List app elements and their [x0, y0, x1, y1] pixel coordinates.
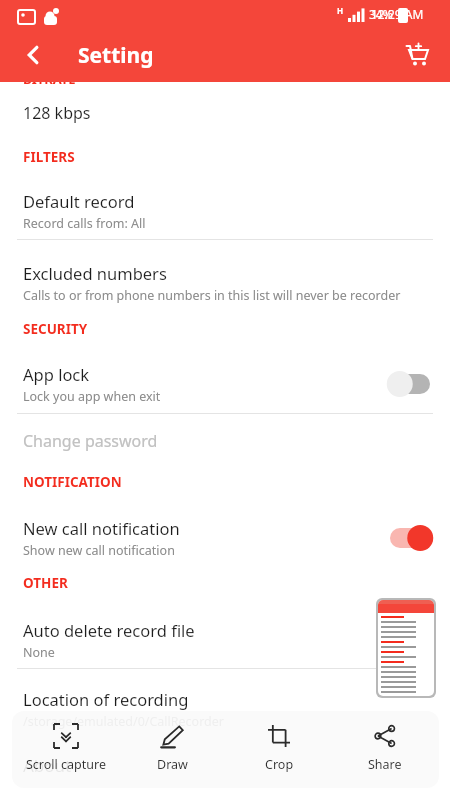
button[interactable]: New call notification [0, 512, 450, 564]
staticText: /storage/emulated/0/CallRecorder [23, 713, 224, 730]
button[interactable]: Location of recording [0, 684, 450, 734]
staticText: BITRATE [23, 70, 76, 88]
button[interactable]: Crop [226, 711, 332, 788]
staticText: Location of recording [23, 688, 189, 710]
staticText: 34% [369, 6, 393, 22]
button[interactable]: 128 kbps [0, 96, 450, 130]
staticText: Excluded numbers [23, 262, 167, 284]
button[interactable]: Toggle on [384, 522, 436, 554]
button[interactable]: Excluded numbers [0, 258, 450, 308]
button[interactable]: Add to cart [394, 31, 442, 79]
button[interactable]: Default record [0, 186, 450, 236]
staticText: About [23, 754, 72, 777]
button[interactable]: About [0, 750, 450, 780]
staticText: Draw [157, 756, 188, 773]
staticText: Lock you app when exit [23, 388, 161, 405]
staticText: Share [368, 756, 402, 773]
staticText: OTHER [23, 574, 68, 592]
staticText: Change password [23, 430, 158, 452]
button[interactable]: Scroll capture [13, 711, 119, 788]
button[interactable]: Toggle off [384, 368, 436, 400]
staticText: Show new call notification [23, 542, 175, 559]
staticText: Scroll capture [26, 756, 106, 773]
staticText: Calls to or from phone numbers in this l… [23, 287, 401, 304]
staticText: 128 kbps [23, 102, 91, 124]
button[interactable]: Share [332, 711, 438, 788]
button[interactable]: Screenshot preview [378, 600, 434, 696]
staticText: SECURITY [23, 320, 88, 338]
staticText: 12:29 AM [371, 6, 450, 22]
staticText: New call notification [23, 517, 180, 539]
button[interactable]: Back [10, 31, 58, 79]
staticText: Default record [23, 190, 135, 212]
staticText: None [23, 644, 55, 661]
staticText: H [337, 5, 344, 16]
button[interactable]: App lock [0, 358, 450, 410]
staticText: Record calls from: All [23, 215, 146, 232]
button[interactable]: Change password [0, 424, 450, 458]
staticText: Crop [265, 756, 294, 773]
button[interactable]: Auto delete record file [0, 615, 450, 665]
button[interactable]: Draw [119, 711, 225, 788]
staticText: Auto delete record file [23, 619, 195, 641]
staticText: NOTIFICATION [23, 473, 122, 491]
staticText: FILTERS [23, 148, 75, 166]
staticText: App lock [23, 363, 90, 385]
staticText: Setting [78, 41, 154, 70]
